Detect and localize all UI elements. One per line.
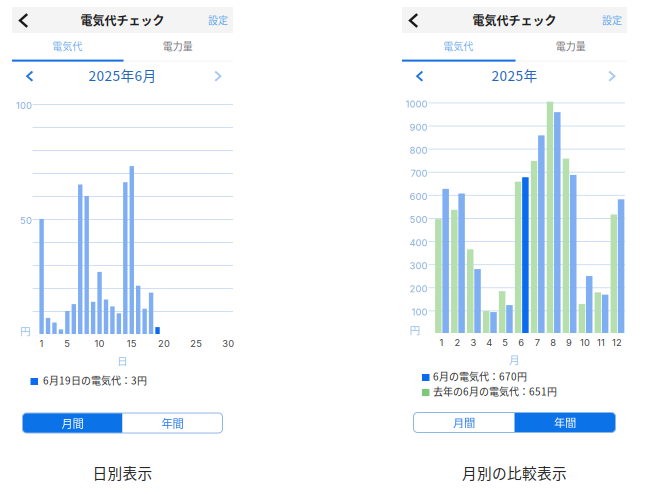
staticText: 10	[580, 337, 590, 348]
staticText: 700	[410, 168, 427, 179]
button[interactable]: 電力量	[122, 33, 233, 59]
staticText: 20	[158, 338, 170, 349]
staticText: 月間	[453, 414, 475, 431]
button[interactable]: 電力量	[514, 33, 627, 59]
staticText: 6	[518, 337, 524, 348]
staticText: 200	[409, 283, 427, 295]
staticText: 電力量	[163, 39, 193, 53]
staticText: 100	[16, 100, 32, 111]
staticText: 電気代	[52, 39, 82, 53]
button[interactable]: Next period	[207, 67, 231, 85]
button[interactable]: Previous period	[18, 67, 42, 85]
staticText: 設定	[208, 13, 228, 27]
staticText: 100	[411, 306, 427, 318]
staticText: 25	[190, 338, 202, 349]
staticText: 8	[550, 337, 556, 348]
staticText: 電気代	[443, 39, 473, 53]
staticText: 円	[20, 323, 31, 338]
staticText: 2025年	[491, 65, 537, 85]
button[interactable]: 設定	[597, 7, 627, 33]
staticText: 1	[439, 337, 443, 348]
staticText: 日	[117, 353, 128, 368]
button[interactable]: Back	[402, 7, 426, 33]
staticText: 6月19日の電気代：3円	[43, 373, 147, 387]
staticText: 600	[409, 191, 427, 202]
staticText: 7	[535, 337, 540, 348]
staticText: 4	[486, 337, 492, 348]
staticText: 800	[409, 145, 427, 156]
staticText: 去年の6月の電気代：651円	[433, 384, 557, 398]
button[interactable]: Back	[12, 7, 36, 33]
staticText: 設定	[602, 13, 622, 27]
staticText: 2025年6月	[88, 65, 156, 85]
button[interactable]: 電気代	[12, 33, 122, 59]
staticText: 年間	[554, 414, 576, 431]
staticText: 9	[566, 337, 572, 348]
staticText: 5	[64, 338, 70, 349]
staticText: 1000	[405, 98, 427, 110]
staticText: 円	[409, 322, 420, 337]
staticText: 電力量	[556, 39, 586, 53]
button[interactable]: Next period	[601, 67, 625, 85]
staticText: 12	[612, 337, 622, 348]
button[interactable]: 年間	[514, 412, 615, 432]
staticText: 500	[409, 214, 427, 225]
staticText: 1	[40, 338, 44, 349]
staticText: 10	[95, 338, 105, 349]
staticText: 15	[127, 338, 137, 349]
staticText: 3	[470, 337, 476, 348]
staticText: 年間	[161, 415, 183, 431]
staticText: 900	[409, 122, 427, 133]
staticText: 電気代チェック	[472, 11, 556, 29]
button[interactable]: 月間	[22, 413, 122, 433]
staticText: 5	[502, 337, 508, 348]
staticText: 電気代チェック	[80, 11, 164, 29]
staticText: 日別表示	[92, 462, 152, 483]
button[interactable]: 設定	[203, 7, 233, 33]
button[interactable]: Previous period	[408, 67, 432, 85]
staticText: 50	[20, 215, 32, 226]
button[interactable]: 電気代	[402, 33, 514, 59]
button[interactable]: 月間	[413, 412, 514, 432]
button[interactable]: 年間	[122, 413, 222, 433]
staticText: 6月の電気代：670円	[433, 369, 527, 383]
staticText: 2	[454, 337, 460, 348]
staticText: 300	[409, 260, 427, 271]
staticText: 月間	[61, 415, 83, 431]
staticText: 月別の比較表示	[462, 462, 567, 483]
staticText: 30	[222, 338, 234, 349]
staticText: 月	[509, 352, 520, 367]
staticText: 11	[597, 337, 605, 348]
staticText: 400	[409, 237, 427, 248]
